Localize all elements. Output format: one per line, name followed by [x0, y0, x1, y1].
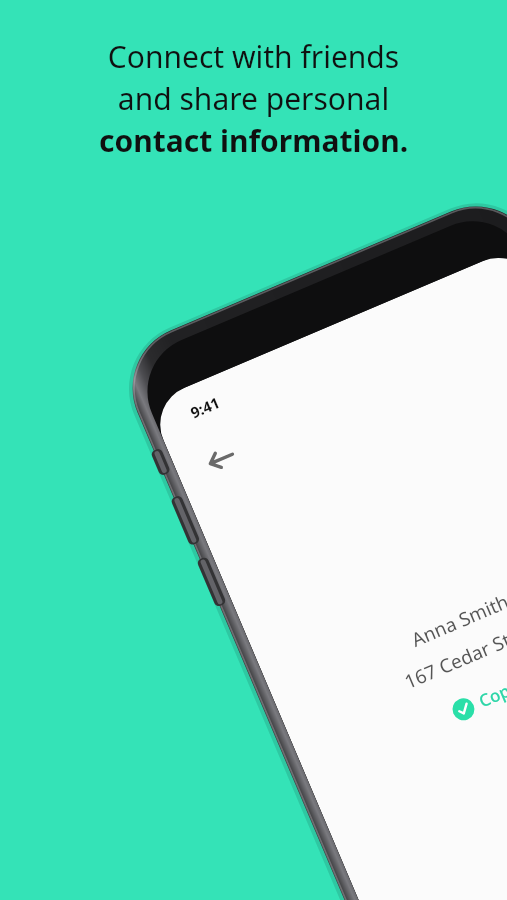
button[interactable]: Copied — [443, 664, 507, 729]
staticText: Connect with friends and share personal … — [0, 36, 507, 161]
staticText: 9:41 — [187, 392, 223, 422]
staticText: 167 Cedar Street — [400, 613, 507, 695]
staticText: Copied — [475, 669, 507, 712]
button[interactable]: Back — [190, 427, 253, 490]
staticText: Anna Smith — [407, 588, 507, 653]
